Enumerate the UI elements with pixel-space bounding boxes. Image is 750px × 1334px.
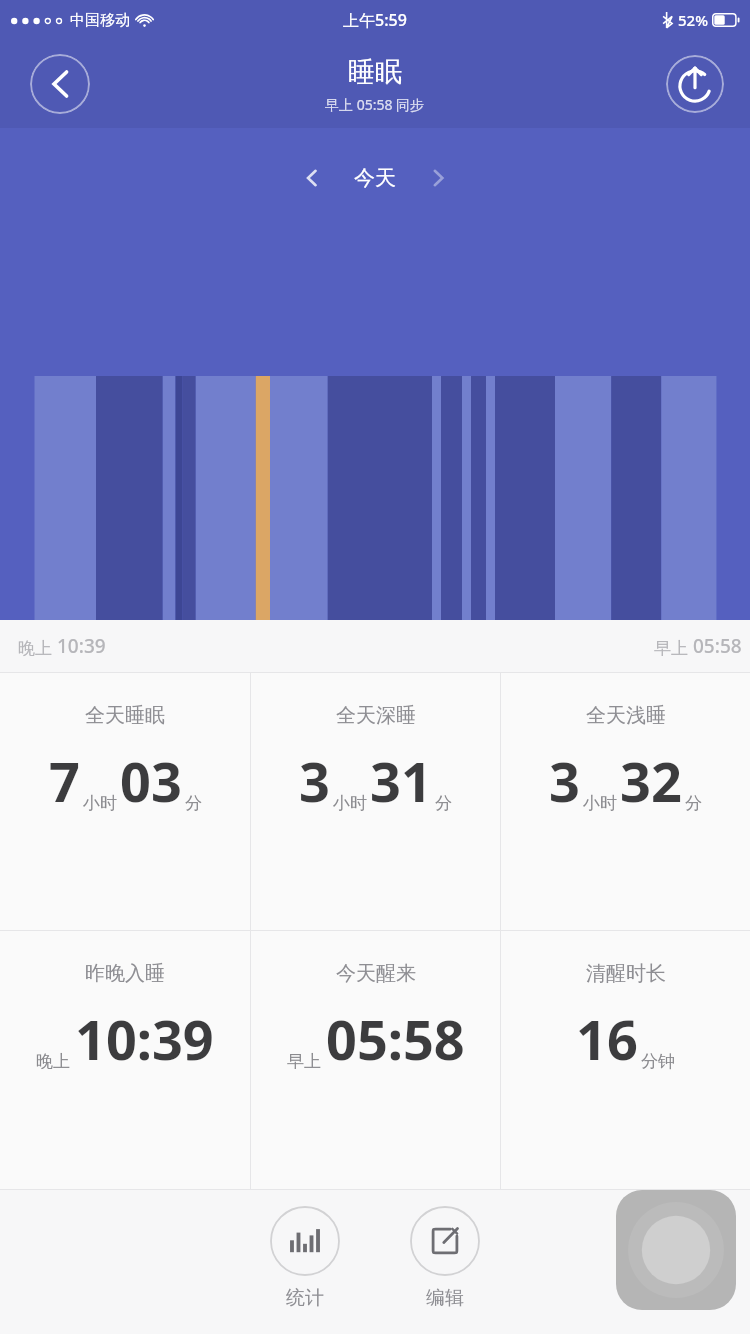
button[interactable]: 全天浅睡 xyxy=(501,673,750,930)
staticText: 今天 xyxy=(354,165,396,191)
staticText: 早上 xyxy=(654,636,693,659)
staticText: 编辑 xyxy=(426,1286,464,1310)
button[interactable]: 今天醒来 xyxy=(251,931,500,1189)
staticText: 05:58 xyxy=(693,633,742,659)
staticText: 52% xyxy=(678,10,708,30)
button[interactable]: 今天 xyxy=(348,163,402,193)
button[interactable]: 返回 xyxy=(30,54,90,114)
staticText: 上午5:59 xyxy=(343,9,407,31)
staticText: 分 xyxy=(685,793,702,814)
staticText: 小时 xyxy=(583,793,617,814)
staticText: 早上 xyxy=(287,1051,321,1072)
button[interactable]: 后一天 xyxy=(416,156,460,200)
staticText: 分钟 xyxy=(641,1051,675,1072)
staticText: 晚上 xyxy=(18,636,57,659)
button[interactable]: 昨晚入睡 xyxy=(0,931,250,1189)
staticText: 全天深睡 xyxy=(336,703,416,728)
staticText: 03 xyxy=(120,744,182,818)
button[interactable]: 统计 xyxy=(264,1204,346,1312)
staticText: 7 xyxy=(49,744,80,818)
button[interactable]: 清醒时长 xyxy=(501,931,750,1189)
button[interactable]: 同步 xyxy=(666,55,724,113)
staticText: 小时 xyxy=(333,793,367,814)
staticText: 中国移动 xyxy=(70,11,130,30)
staticText: 10:39 xyxy=(57,633,106,659)
staticText: 分 xyxy=(435,793,452,814)
button[interactable]: 编辑 xyxy=(404,1204,486,1312)
staticText: 10:39 xyxy=(75,1002,214,1076)
staticText: 早上 05:58 同步 xyxy=(325,95,425,114)
staticText: 分 xyxy=(185,793,202,814)
button[interactable]: 前一天 xyxy=(290,156,334,200)
button[interactable]: 辅助触控 xyxy=(616,1190,736,1310)
staticText: 全天浅睡 xyxy=(586,703,666,728)
staticText: 3 xyxy=(299,744,330,818)
staticText: 今天醒来 xyxy=(336,961,416,986)
button[interactable]: 全天深睡 xyxy=(251,673,500,930)
staticText: 3 xyxy=(549,744,580,818)
staticText: 16 xyxy=(576,1002,638,1076)
button[interactable]: 全天睡眠 xyxy=(0,673,250,930)
staticText: 昨晚入睡 xyxy=(85,961,165,986)
staticText: 小时 xyxy=(83,793,117,814)
staticText: 清醒时长 xyxy=(586,961,666,986)
staticText: 统计 xyxy=(286,1286,324,1310)
staticText: 31 xyxy=(370,744,432,818)
staticText: 晚上 xyxy=(36,1051,70,1072)
staticText: 32 xyxy=(620,744,682,818)
staticText: 05:58 xyxy=(326,1002,465,1076)
staticText: 全天睡眠 xyxy=(85,703,165,728)
staticText: 睡眠 xyxy=(348,55,402,89)
